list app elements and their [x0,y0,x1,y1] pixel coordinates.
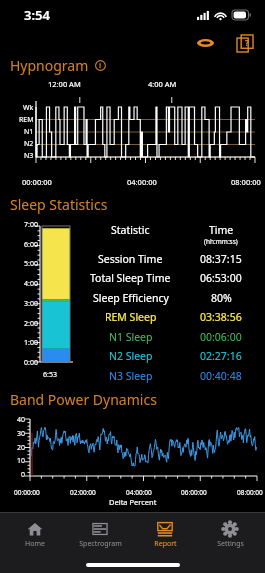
staticText: Settings [217,539,244,549]
staticText: Spectrogram [79,539,122,549]
staticText: 08:00:00 [237,488,263,497]
staticText: 3:00 [24,299,38,309]
staticText: N2 Sleep [109,349,153,363]
staticText: 02:27:16 [200,349,242,363]
button[interactable]: Spectrogram [70,513,130,557]
staticText: Sleep Efficiency [93,291,169,305]
staticText: 04:00:00 [126,488,152,497]
button[interactable]: Home [5,513,65,557]
staticText: Wk [23,103,34,113]
staticText: 12:00 AM [48,79,81,89]
staticText: 0 [21,470,26,480]
staticText: 6:53 [43,370,57,380]
staticText: Session Time [98,252,163,266]
staticText: 30 [17,429,26,439]
staticText: N3 Sleep [109,369,153,383]
button[interactable]: Report [135,513,195,557]
staticText: 1:00 [24,338,38,348]
staticText: 2:00 [24,319,38,329]
staticText: Statistic [111,223,150,237]
staticText: 4:00 AM [148,79,177,89]
staticText: 6:00 [24,240,38,250]
staticText: 08:37:15 [200,252,242,266]
staticText: (hh:mm:ss) [204,237,238,246]
staticText: 00:00:00 [14,488,40,497]
staticText: 06:53:00 [200,271,242,285]
staticText: 00:40:48 [200,369,242,383]
staticText: 03:38:56 [200,310,242,324]
staticText: 00:06:00 [200,330,242,344]
staticText: 40 [17,415,26,425]
staticText: Band Power Dynamics [10,390,157,409]
staticText: 02:00:00 [70,488,96,497]
staticText: Delta Percent [109,497,157,507]
staticText: REM Sleep [105,310,157,324]
staticText: REM [19,115,34,125]
staticText: ? [245,37,249,48]
staticText: 10 [17,456,26,466]
staticText: 3:54 [24,6,50,24]
staticText: Time [209,223,234,237]
staticText: N2 [24,139,34,149]
staticText: N1 Sleep [109,330,153,344]
staticText: 04:00:00 [127,177,157,187]
staticText: 0:00 [24,358,38,368]
staticText: N3 [24,151,34,161]
button[interactable]: Device status [191,32,219,54]
staticText: Hypnogram [10,56,89,75]
staticText: 06:00:00 [181,488,207,497]
staticText: 08:00:00 [231,177,261,187]
staticText: Total Sleep Time [90,271,171,285]
staticText: i [99,61,102,71]
staticText: N1 [24,127,34,137]
staticText: 5:00 [24,259,38,269]
staticText: 7:00 [24,220,38,230]
staticText: 4:00 [24,279,38,289]
button[interactable]: Help [231,31,259,55]
staticText: Home [25,539,45,549]
staticText: Report [154,539,177,549]
staticText: Sleep Statistics [10,195,108,214]
button[interactable]: Settings [200,513,260,557]
button[interactable]: Information [94,59,107,72]
staticText: 00:00:00 [22,177,52,187]
staticText: 20 [17,443,26,453]
staticText: 80% [211,291,232,305]
